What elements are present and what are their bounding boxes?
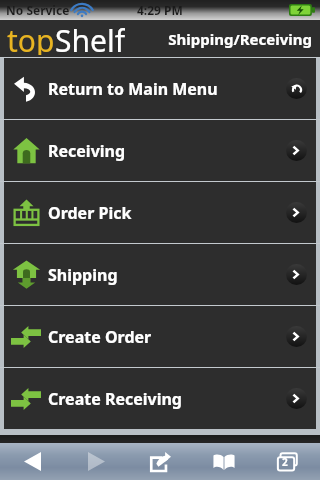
- button[interactable]: Tabs, 2 open: [256, 443, 320, 480]
- button[interactable]: Open Receiving: [286, 140, 307, 161]
- button[interactable]: Create Order: [4, 306, 316, 367]
- button[interactable]: Receiving: [4, 120, 316, 181]
- staticText: Receiving: [48, 140, 286, 162]
- staticText: Order Pick: [48, 202, 286, 224]
- staticText: 2: [282, 455, 288, 469]
- staticText: Return to Main Menu: [48, 78, 286, 100]
- button[interactable]: Go back: [286, 78, 307, 99]
- button[interactable]: Open Create Order: [286, 326, 307, 347]
- button[interactable]: Create Receiving: [4, 368, 316, 429]
- button[interactable]: Back: [0, 443, 64, 480]
- button[interactable]: Order Pick: [4, 182, 316, 243]
- staticText: Create Receiving: [48, 388, 286, 410]
- staticText: 4:29 PM: [137, 2, 183, 18]
- staticText: Shipping/Receiving: [168, 29, 312, 49]
- button[interactable]: Return to Main Menu: [4, 58, 316, 119]
- staticText: Shipping: [48, 264, 286, 286]
- staticText: No Service: [6, 2, 70, 18]
- button[interactable]: Bookmarks: [192, 443, 256, 480]
- button[interactable]: Open Shipping: [286, 264, 307, 285]
- staticText: top: [7, 20, 55, 55]
- staticText: Create Order: [48, 326, 286, 348]
- button[interactable]: Forward: [64, 443, 128, 480]
- staticText: Shelf: [55, 20, 125, 55]
- button[interactable]: Open Create Receiving: [286, 388, 307, 409]
- button[interactable]: Share: [128, 443, 192, 480]
- button[interactable]: Shipping: [4, 244, 316, 305]
- button[interactable]: Open Order Pick: [286, 202, 307, 223]
